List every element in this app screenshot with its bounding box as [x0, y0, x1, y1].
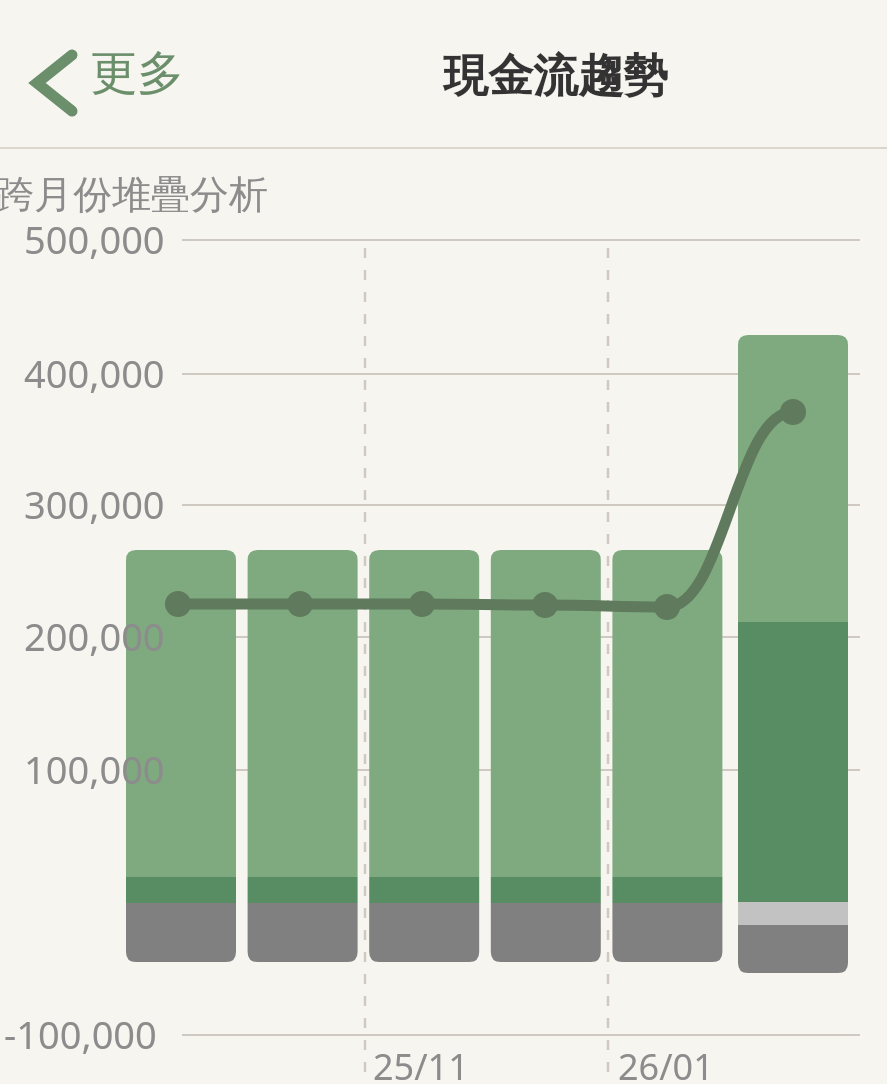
staticText: 100,000	[24, 743, 165, 795]
staticText: 200,000	[24, 610, 165, 662]
staticText: 26/01	[618, 1042, 714, 1084]
button[interactable]: 返回 更多	[6, 38, 221, 122]
staticText: 現金流趨勢	[443, 48, 668, 105]
staticText: 300,000	[24, 478, 165, 530]
staticText: 跨月份堆疊分析	[0, 170, 268, 219]
staticText: 400,000	[24, 347, 165, 399]
staticText: 25/11	[373, 1042, 469, 1084]
staticText: 更多	[90, 44, 184, 103]
staticText: -100,000	[4, 1008, 157, 1060]
staticText: 500,000	[24, 213, 165, 265]
